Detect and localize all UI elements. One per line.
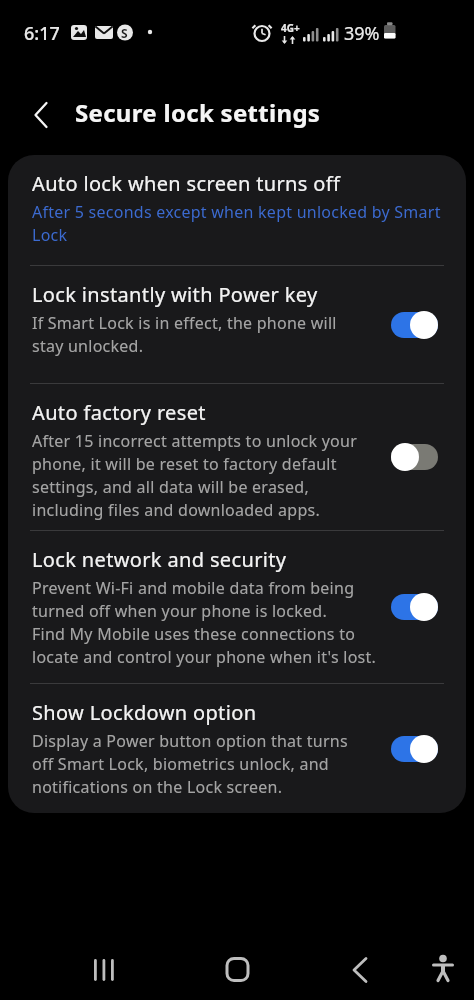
button[interactable]: Auto factory reset — [8, 384, 466, 530]
staticText: Lock instantly with Power key — [32, 281, 318, 308]
staticText: After 5 seconds except when kept unlocke… — [32, 201, 441, 246]
staticText: 6:17 — [24, 21, 60, 46]
staticText: Display a Power button option that turns… — [32, 730, 348, 798]
button[interactable] — [424, 944, 462, 1000]
button[interactable]: Show Lockdown option — [8, 684, 466, 813]
button[interactable] — [0, 62, 60, 155]
staticText: 39% — [344, 21, 380, 46]
button[interactable] — [391, 735, 438, 763]
staticText: If Smart Lock is in effect, the phone wi… — [32, 312, 337, 357]
button[interactable]: Lock network and security — [8, 531, 466, 683]
staticText: 4G+ — [281, 21, 300, 35]
button[interactable] — [391, 311, 438, 339]
staticText: Prevent Wi-Fi and mobile data from being… — [32, 577, 377, 668]
button[interactable] — [218, 944, 256, 1000]
staticText: Lock network and security — [32, 546, 287, 573]
staticText: Secure lock settings — [75, 96, 321, 129]
staticText: Auto lock when screen turns off — [32, 170, 341, 197]
button[interactable]: Lock instantly with Power key — [8, 266, 466, 383]
button[interactable] — [391, 593, 438, 621]
staticText: After 15 incorrect attempts to unlock yo… — [32, 430, 358, 521]
button[interactable] — [391, 443, 438, 471]
staticText: S — [121, 25, 128, 41]
button[interactable] — [341, 944, 379, 1000]
staticText: Show Lockdown option — [32, 699, 257, 726]
staticText: Auto factory reset — [32, 399, 206, 426]
button[interactable]: Auto lock when screen turns off — [8, 155, 466, 265]
button[interactable]: Secure lock settings — [75, 96, 321, 129]
button[interactable] — [85, 944, 123, 1000]
